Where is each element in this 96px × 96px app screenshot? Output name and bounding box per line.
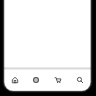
button[interactable]: Cart — [47, 68, 69, 92]
button[interactable]: Search — [69, 68, 91, 92]
button[interactable]: Home — [4, 68, 25, 92]
button[interactable]: Explore — [25, 68, 47, 92]
